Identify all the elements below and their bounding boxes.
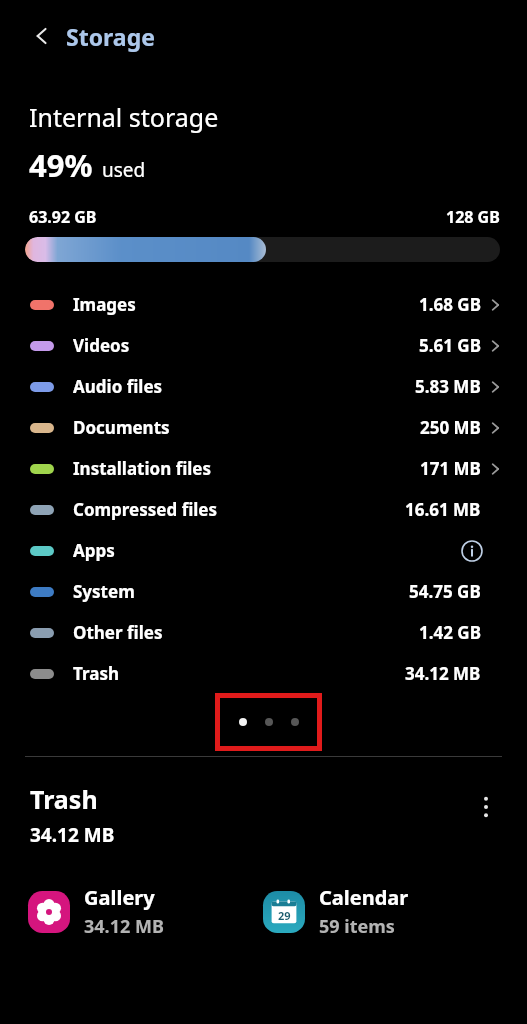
staticText: 16.61 MB	[405, 498, 481, 521]
staticText: Audio files	[73, 375, 163, 398]
staticText: used	[102, 157, 146, 183]
staticText: 1.42 GB	[419, 621, 481, 644]
staticText: System	[73, 580, 135, 603]
button[interactable]: System	[0, 571, 527, 612]
staticText: Images	[73, 293, 136, 316]
staticText: Storage	[66, 21, 155, 52]
button[interactable]: Gallery	[0, 880, 263, 943]
staticText: Videos	[73, 334, 130, 357]
button[interactable]: Trash	[0, 653, 527, 694]
staticText: Compressed files	[73, 498, 218, 521]
staticText: Apps	[73, 539, 115, 562]
staticText: 34.12 MB	[30, 822, 115, 848]
staticText: Trash	[73, 662, 119, 685]
button[interactable]: Back	[22, 16, 62, 56]
staticText: 250 MB	[420, 416, 481, 439]
button[interactable]: Compressed files	[0, 489, 527, 530]
button[interactable]: Apps	[0, 530, 527, 571]
button[interactable]: Documents	[0, 407, 527, 448]
staticText: Installation files	[73, 457, 212, 480]
staticText: 5.83 MB	[415, 375, 481, 398]
staticText: 128 GB	[446, 206, 500, 228]
staticText: Calendar	[319, 884, 409, 911]
staticText: 171 MB	[420, 457, 481, 480]
staticText: Internal storage	[29, 100, 219, 134]
button[interactable]: Apps storage info	[459, 538, 485, 564]
button[interactable]: 29	[263, 880, 527, 943]
staticText: 49%	[29, 144, 93, 186]
staticText: 63.92 GB	[29, 206, 97, 228]
button[interactable]: Audio files	[0, 366, 527, 407]
staticText: Gallery	[84, 884, 155, 911]
staticText: 29	[278, 908, 291, 923]
staticText: Documents	[73, 416, 170, 439]
button[interactable]: Other files	[0, 612, 527, 653]
button[interactable]: More options	[469, 790, 503, 824]
button[interactable]: Images	[0, 284, 527, 325]
staticText: 34.12 MB	[405, 662, 481, 685]
staticText: 1.68 GB	[419, 293, 481, 316]
staticText: Other files	[73, 621, 163, 644]
staticText: Trash	[30, 782, 98, 816]
button[interactable]: Videos	[0, 325, 527, 366]
button[interactable]: Installation files	[0, 448, 527, 489]
staticText: 34.12 MB	[84, 914, 164, 939]
staticText: 59 items	[319, 914, 395, 939]
staticText: 5.61 GB	[419, 334, 481, 357]
staticText: 54.75 GB	[409, 580, 481, 603]
